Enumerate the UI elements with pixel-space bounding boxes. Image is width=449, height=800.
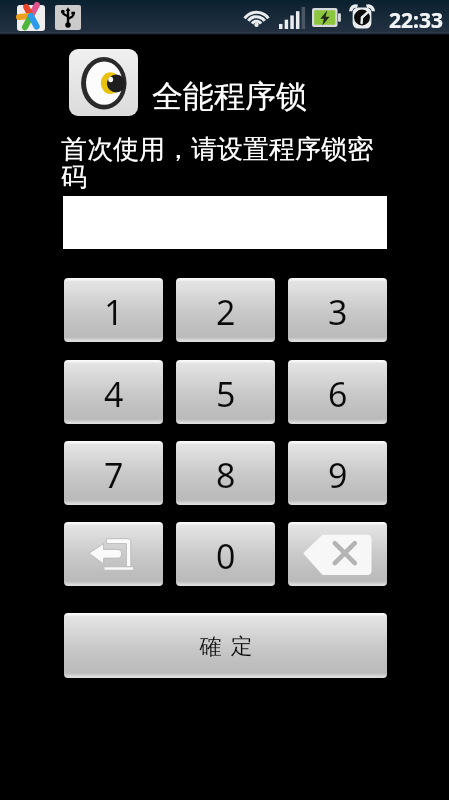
- button[interactable]: 0: [176, 522, 275, 586]
- staticText: 9: [328, 452, 348, 498]
- button[interactable]: Backspace: [288, 522, 387, 586]
- button[interactable]: 7: [64, 441, 163, 505]
- button[interactable]: 確定: [64, 613, 387, 678]
- staticText: 6: [328, 371, 348, 417]
- staticText: 22:33: [389, 6, 443, 35]
- button[interactable]: Back: [64, 522, 163, 586]
- button[interactable]: 8: [176, 441, 275, 505]
- staticText: 5: [216, 371, 236, 417]
- button[interactable]: 6: [288, 360, 387, 424]
- staticText: 首次使用，请设置程序锁密码: [61, 133, 383, 194]
- button[interactable]: 4: [64, 360, 163, 424]
- staticText: 確定: [195, 633, 257, 661]
- staticText: 1: [104, 289, 124, 335]
- button[interactable]: 3: [288, 278, 387, 342]
- staticText: 8: [216, 452, 236, 498]
- button[interactable]: 9: [288, 441, 387, 505]
- button[interactable]: 1: [64, 278, 163, 342]
- staticText: 全能程序锁: [152, 77, 307, 116]
- staticText: 2: [216, 289, 236, 335]
- staticText: 7: [104, 452, 124, 498]
- staticText: 0: [216, 533, 236, 579]
- button[interactable]: 2: [176, 278, 275, 342]
- staticText: 4: [104, 371, 124, 417]
- button[interactable]: 5: [176, 360, 275, 424]
- staticText: 3: [328, 289, 348, 335]
